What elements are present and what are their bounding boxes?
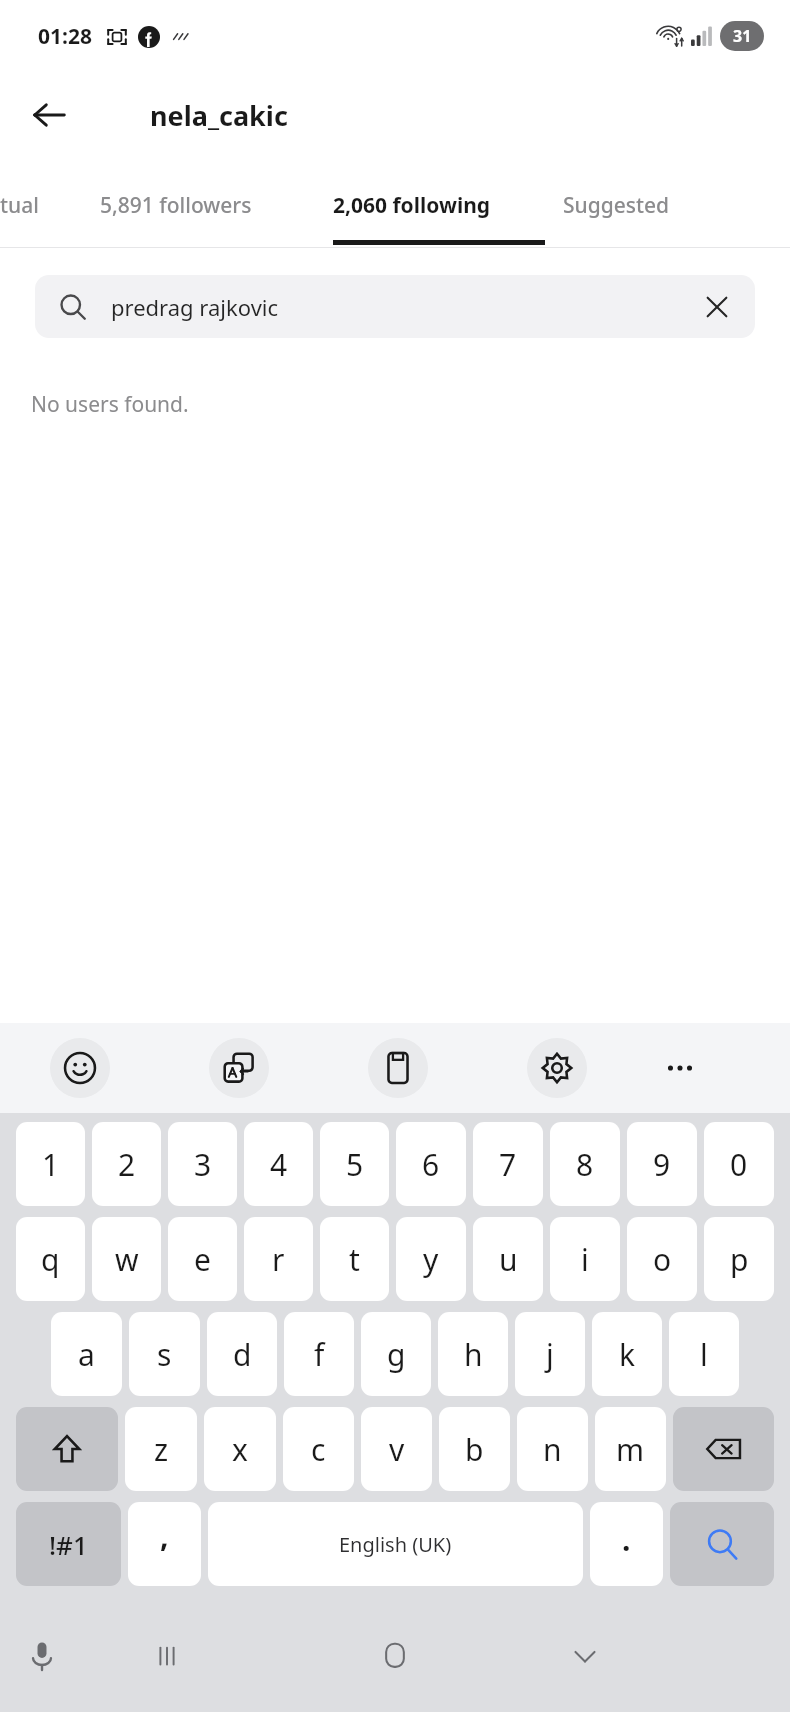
staticText: m (616, 1429, 645, 1470)
staticText: x (232, 1429, 248, 1470)
button[interactable]: Suggested (563, 183, 670, 227)
button[interactable]: c (283, 1407, 354, 1491)
button[interactable]: Voice input (12, 1626, 72, 1686)
staticText: z (154, 1429, 169, 1470)
staticText: w (115, 1239, 139, 1280)
button[interactable]: x (204, 1407, 276, 1491)
staticText: i (581, 1239, 589, 1280)
button[interactable]: r (244, 1217, 313, 1301)
staticText: f (314, 1334, 325, 1375)
button[interactable]: Keyboard tool (50, 1038, 110, 1098)
button[interactable]: , (128, 1502, 201, 1586)
staticText: 31 (733, 25, 752, 47)
staticText: j (546, 1334, 554, 1375)
button[interactable]: a (51, 1312, 122, 1396)
button[interactable]: Hide keyboard (550, 1621, 620, 1691)
staticText: 7 (499, 1144, 517, 1185)
button[interactable]: Keyboard tool (209, 1038, 269, 1098)
button[interactable]: !#1 (16, 1502, 121, 1586)
staticText: 5 (346, 1144, 364, 1185)
button[interactable]: 9 (627, 1122, 697, 1206)
staticText: o (653, 1239, 672, 1280)
button[interactable]: Clear search (689, 279, 745, 335)
button[interactable]: 8 (550, 1122, 620, 1206)
staticText: , (160, 1515, 169, 1556)
button[interactable]: v (361, 1407, 432, 1491)
button[interactable]: y (396, 1217, 466, 1301)
button[interactable]: 4 (244, 1122, 313, 1206)
staticText: h (464, 1334, 483, 1375)
button[interactable]: Back (18, 84, 80, 146)
staticText: e (194, 1239, 211, 1280)
button[interactable]: f (284, 1312, 354, 1396)
staticText: p (730, 1239, 749, 1280)
button[interactable]: l (669, 1312, 739, 1396)
staticText: Suggested (563, 191, 670, 220)
button[interactable]: Recent apps (132, 1621, 202, 1691)
button[interactable]: m (595, 1407, 666, 1491)
button[interactable]: Backspace (673, 1407, 774, 1491)
staticText: g (387, 1334, 406, 1375)
staticText: 1 (42, 1144, 60, 1185)
button[interactable]: Search (670, 1502, 774, 1586)
button[interactable]: English (UK) (208, 1502, 583, 1586)
button[interactable]: t (320, 1217, 389, 1301)
button[interactable]: k (592, 1312, 662, 1396)
button[interactable]: 7 (473, 1122, 543, 1206)
staticText: 01:28 (38, 22, 92, 51)
staticText: 9 (653, 1144, 671, 1185)
button[interactable]: j (515, 1312, 585, 1396)
button[interactable]: Shift (16, 1407, 118, 1491)
button[interactable]: n (517, 1407, 588, 1491)
button[interactable]: o (627, 1217, 697, 1301)
staticText: No users found. (31, 390, 189, 419)
staticText: v (389, 1429, 405, 1470)
staticText: 0 (730, 1144, 748, 1185)
button[interactable]: u (473, 1217, 543, 1301)
staticText: q (41, 1239, 60, 1280)
button[interactable]: s (129, 1312, 200, 1396)
button[interactable]: g (361, 1312, 431, 1396)
button[interactable]: p (704, 1217, 774, 1301)
button[interactable]: z (125, 1407, 197, 1491)
button[interactable]: Keyboard tool (368, 1038, 428, 1098)
button[interactable]: 1 (16, 1122, 85, 1206)
button[interactable]: 2 (92, 1122, 161, 1206)
button[interactable]: predrag rajkovic (35, 275, 755, 338)
button[interactable]: i (550, 1217, 620, 1301)
button[interactable]: h (438, 1312, 508, 1396)
staticText: u (499, 1239, 518, 1280)
staticText: 2 (118, 1144, 136, 1185)
button[interactable]: Home (358, 1619, 432, 1693)
button[interactable]: 2,060 following (333, 183, 491, 227)
staticText: nela_cakic (150, 97, 288, 134)
staticText: 2,060 following (333, 191, 491, 220)
staticText: n (543, 1429, 562, 1470)
button[interactable]: 3 (168, 1122, 237, 1206)
button[interactable]: More keyboard options (652, 1040, 708, 1096)
button[interactable]: b (439, 1407, 510, 1491)
button[interactable]: 5 (320, 1122, 389, 1206)
staticText: 5,891 followers (100, 191, 252, 220)
staticText: k (619, 1334, 636, 1375)
staticText: s (157, 1334, 172, 1375)
staticText: 3 (194, 1144, 212, 1185)
button[interactable]: e (168, 1217, 237, 1301)
button[interactable]: d (207, 1312, 277, 1396)
button[interactable]: Keyboard tool (527, 1038, 587, 1098)
button[interactable]: . (590, 1502, 663, 1586)
staticText: a (78, 1334, 95, 1375)
button[interactable]: w (92, 1217, 161, 1301)
staticText: 4 (270, 1144, 288, 1185)
staticText: b (465, 1429, 484, 1470)
staticText: 8 (576, 1144, 594, 1185)
staticText: English (UK) (339, 1531, 452, 1558)
staticText: r (272, 1239, 285, 1280)
button[interactable]: 6 (396, 1122, 466, 1206)
button[interactable]: 0 (704, 1122, 774, 1206)
staticText: y (423, 1239, 439, 1280)
button[interactable]: tual (0, 183, 70, 227)
staticText: . (622, 1519, 631, 1560)
button[interactable]: q (16, 1217, 85, 1301)
button[interactable]: 5,891 followers (100, 183, 252, 227)
